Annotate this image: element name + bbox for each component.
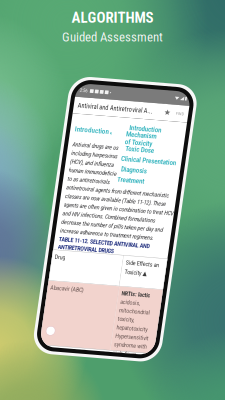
- staticText: 2:56: [103, 108, 127, 125]
- staticText: human immunodeficie: [105, 347, 225, 367]
- staticText: (HCV), and influenza: [105, 321, 225, 341]
- staticText: antiretroviral agents from different mec…: [105, 399, 225, 400]
- staticText: Antiviral drugs are us: [105, 269, 225, 289]
- staticText: Antiviral and Antiretroviral A...: [104, 151, 225, 174]
- button[interactable]: Antiviral and Antiretroviral A...: [92, 137, 225, 187]
- button[interactable]: Introduction: [105, 220, 217, 245]
- staticText: Introduction: [105, 220, 208, 245]
- staticText: ALGORITHMS: [71, 9, 153, 26]
- staticText: Guided Assessment: [62, 29, 163, 44]
- staticText: including herpesvirus: [105, 295, 225, 315]
- staticText: to as antiretrovirals.: [105, 373, 225, 393]
